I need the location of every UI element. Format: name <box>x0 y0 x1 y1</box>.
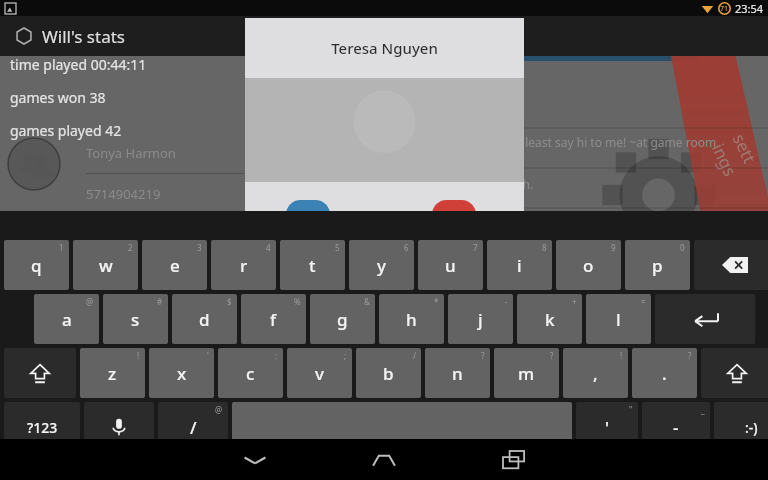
button[interactable]: ?123 <box>4 402 80 452</box>
staticText: * <box>434 296 439 307</box>
button[interactable]: Backspace <box>694 240 768 290</box>
staticText: settings <box>707 130 763 180</box>
button[interactable]: Voice input <box>84 402 154 452</box>
button[interactable]: , <box>563 348 628 398</box>
staticText: $ <box>227 296 232 307</box>
staticText: j <box>478 308 483 331</box>
staticText: 9 <box>611 242 616 253</box>
staticText: Teresa Nguyen <box>331 38 438 58</box>
button[interactable]: x <box>149 348 214 398</box>
staticText: / <box>190 416 197 439</box>
button[interactable]: j <box>448 294 513 344</box>
button[interactable]: f <box>241 294 306 344</box>
staticText: = <box>641 296 646 307</box>
button[interactable]: k <box>517 294 582 344</box>
button[interactable]: Hide keyboard <box>215 439 295 480</box>
staticText: 3 <box>197 242 202 253</box>
staticText: h <box>406 308 417 331</box>
staticText: Tonya Harmon <box>86 144 176 162</box>
staticText: s <box>131 308 140 331</box>
staticText: time played 00:44:11 <box>10 55 147 74</box>
button[interactable]: Recent apps <box>474 439 554 480</box>
button[interactable]: settings <box>718 110 752 200</box>
staticText: k <box>545 308 555 331</box>
button[interactable]: Shift <box>4 348 76 398</box>
staticText: @ <box>215 404 223 415</box>
button[interactable]: v <box>287 348 352 398</box>
button[interactable]: l <box>586 294 651 344</box>
staticText: # <box>157 296 163 307</box>
button[interactable]: Shift <box>701 348 768 398</box>
button[interactable]: . <box>632 348 697 398</box>
staticText: 23:54 <box>735 1 764 16</box>
staticText: ?123 <box>27 418 58 437</box>
button[interactable]: - <box>642 402 710 452</box>
staticText: games won 38 <box>10 88 106 107</box>
staticText: p <box>652 254 663 277</box>
staticText: a <box>62 308 72 331</box>
staticText: / <box>413 350 416 361</box>
button[interactable]: i <box>487 240 552 290</box>
staticText: d <box>199 308 210 331</box>
staticText: 8 <box>542 242 547 253</box>
button[interactable]: o <box>556 240 621 290</box>
staticText: ! <box>137 350 140 361</box>
staticText: - <box>673 416 679 439</box>
button[interactable]: :-) <box>714 402 768 452</box>
button[interactable]: n <box>425 348 490 398</box>
staticText: " <box>629 404 633 415</box>
button[interactable]: h <box>379 294 444 344</box>
button[interactable]: q <box>4 240 69 290</box>
staticText: y <box>377 254 386 277</box>
staticText: t <box>309 254 316 277</box>
button[interactable]: y <box>349 240 414 290</box>
button[interactable]: t <box>280 240 345 290</box>
button[interactable]: c <box>218 348 283 398</box>
staticText: ? <box>481 350 485 361</box>
button[interactable]: Space <box>232 402 572 452</box>
button[interactable]: g <box>310 294 375 344</box>
button[interactable]: w <box>73 240 138 290</box>
staticText: 2 <box>128 242 133 253</box>
button[interactable]: play <box>523 16 698 61</box>
button[interactable]: z <box>80 348 145 398</box>
staticText: ! <box>620 350 623 361</box>
button[interactable]: s <box>103 294 168 344</box>
button[interactable]: d <box>172 294 237 344</box>
button[interactable]: m <box>494 348 559 398</box>
button[interactable]: r <box>211 240 276 290</box>
staticText: i <box>517 254 522 277</box>
staticText: - <box>505 296 508 307</box>
staticText: 6 <box>404 242 409 253</box>
staticText: % <box>294 296 301 307</box>
staticText: 1 <box>59 242 64 253</box>
staticText: 5714904219 <box>86 185 161 203</box>
staticText: + <box>572 296 577 307</box>
staticText: ; <box>344 350 347 361</box>
staticText: f <box>270 308 277 331</box>
button[interactable]: Home <box>344 439 424 480</box>
staticText: g <box>337 308 348 331</box>
staticText: x <box>177 362 187 385</box>
staticText: ? <box>550 350 554 361</box>
button[interactable]: Enter <box>655 294 755 344</box>
button[interactable]: a <box>34 294 99 344</box>
staticText: l <box>616 308 621 331</box>
button[interactable]: Accept call <box>286 200 330 229</box>
staticText: 5 <box>335 242 340 253</box>
staticText: q <box>31 254 42 277</box>
button[interactable]: b <box>356 348 421 398</box>
staticText: _ <box>701 404 705 415</box>
button[interactable]: p <box>625 240 690 290</box>
button[interactable]: Decline call <box>432 200 476 229</box>
staticText: . <box>662 362 667 385</box>
button[interactable]: ' <box>576 402 638 452</box>
button[interactable]: u <box>418 240 483 290</box>
button[interactable]: / <box>158 402 228 452</box>
staticText: b <box>383 362 394 385</box>
staticText: o <box>583 254 594 277</box>
staticText: ' <box>207 350 209 361</box>
staticText: & <box>364 296 370 307</box>
staticText: c <box>246 362 255 385</box>
button[interactable]: e <box>142 240 207 290</box>
